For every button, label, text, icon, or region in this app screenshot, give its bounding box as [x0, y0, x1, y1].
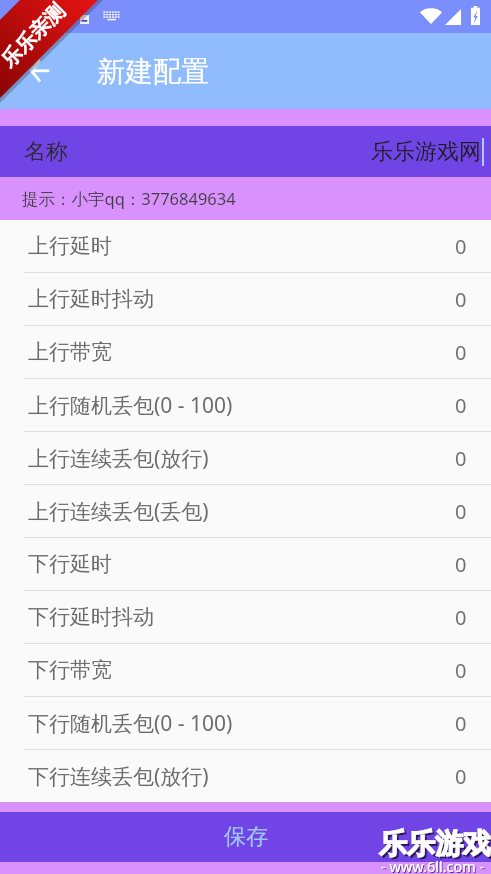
button[interactable]: 上行随机丢包(0 - 100) [0, 379, 491, 431]
staticText: 0 [455, 233, 467, 260]
staticText: 上行延时抖动 [28, 286, 154, 312]
button[interactable]: 下行随机丢包(0 - 100) [0, 697, 491, 749]
staticText: 0 [455, 286, 467, 313]
button[interactable]: 保存 [0, 812, 491, 862]
staticText: 0 [455, 339, 467, 366]
staticText: 0 [455, 498, 467, 525]
staticText: 新建配置 [97, 54, 209, 89]
button[interactable]: 上行延时抖动 [0, 273, 491, 325]
staticText: 上行带宽 [28, 339, 112, 365]
staticText: 0 [455, 445, 467, 472]
staticText: 下行带宽 [28, 657, 112, 683]
staticText: 0 [455, 392, 467, 419]
staticText: 下行延时抖动 [28, 604, 154, 630]
staticText: 下行延时 [28, 551, 112, 577]
button[interactable]: Back [16, 47, 64, 95]
button[interactable]: 下行延时抖动 [0, 591, 491, 643]
button[interactable]: 上行连续丢包(丢包) [0, 485, 491, 537]
staticText: 0 [455, 551, 467, 578]
staticText: 上行连续丢包(丢包) [28, 497, 209, 526]
staticText: 上行连续丢包(放行) [28, 444, 209, 473]
button[interactable]: 上行连续丢包(放行) [0, 432, 491, 484]
staticText: 0 [455, 763, 467, 790]
button[interactable]: 上行延时 [0, 220, 491, 272]
staticText: 保存 [224, 823, 268, 851]
staticText: 提示：小宇qq：3776849634 [22, 187, 236, 210]
staticText: 上行延时 [28, 233, 112, 259]
staticText: 乐乐游戏 [381, 828, 491, 863]
staticText: 0 [455, 657, 467, 684]
staticText: 乐乐亲测 [0, 0, 70, 73]
button[interactable]: 下行带宽 [0, 644, 491, 696]
button[interactable]: 上行带宽 [0, 326, 491, 378]
button[interactable]: 名称 [0, 126, 491, 177]
staticText: 下行随机丢包(0 - 100) [28, 709, 233, 738]
staticText: 上行随机丢包(0 - 100) [28, 391, 233, 420]
staticText: 乐乐游戏网 [371, 138, 481, 166]
staticText: 0 [455, 710, 467, 737]
staticText: - www.6ll.com - [382, 857, 486, 874]
staticText: 乐乐游戏 [379, 826, 491, 861]
staticText: 下行连续丢包(放行) [28, 762, 209, 791]
staticText: 名称 [24, 138, 68, 166]
staticText: 0 [455, 604, 467, 631]
staticText: - www.6ll.com - [381, 856, 485, 874]
button[interactable]: 下行延时 [0, 538, 491, 590]
button[interactable]: 下行连续丢包(放行) [0, 750, 491, 802]
